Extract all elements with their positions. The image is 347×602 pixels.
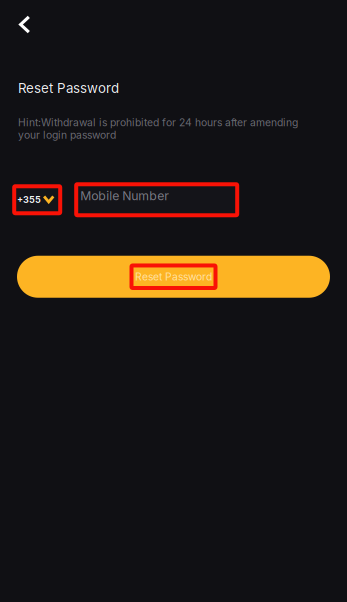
button[interactable]: +355	[14, 186, 60, 213]
staticText: Mobile Number	[80, 188, 169, 203]
button[interactable]: Back	[0, 0, 54, 49]
button[interactable]: Mobile Number	[76, 184, 237, 215]
staticText: Reset Password	[135, 270, 212, 283]
staticText: +355	[17, 194, 41, 205]
staticText: Hint:Withdrawal is prohibited for 24 hou…	[18, 116, 298, 141]
button[interactable]: Reset Password	[17, 256, 330, 298]
staticText: Reset Password	[18, 80, 119, 96]
